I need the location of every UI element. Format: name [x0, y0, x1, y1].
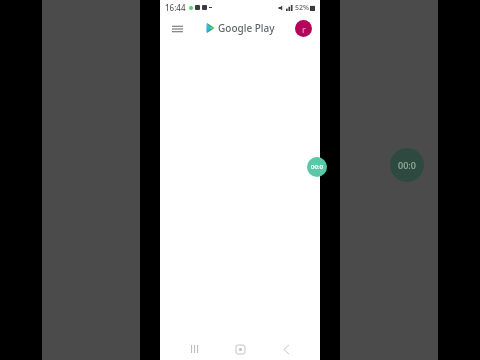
staticText: 52%	[295, 3, 309, 13]
button[interactable]: Home	[229, 338, 251, 360]
button[interactable]: Account	[295, 20, 312, 37]
staticText: 00:0	[311, 163, 323, 171]
staticText: 16:44	[165, 2, 186, 13]
button[interactable]: Open navigation menu	[168, 19, 186, 37]
button[interactable]: Recent apps	[184, 338, 206, 360]
button[interactable]: Back	[275, 338, 297, 360]
button[interactable]: Screen recorder timer	[307, 157, 327, 177]
staticText: 00:0	[398, 159, 416, 171]
staticText: Google Play	[218, 21, 275, 35]
staticText: r	[302, 23, 306, 35]
